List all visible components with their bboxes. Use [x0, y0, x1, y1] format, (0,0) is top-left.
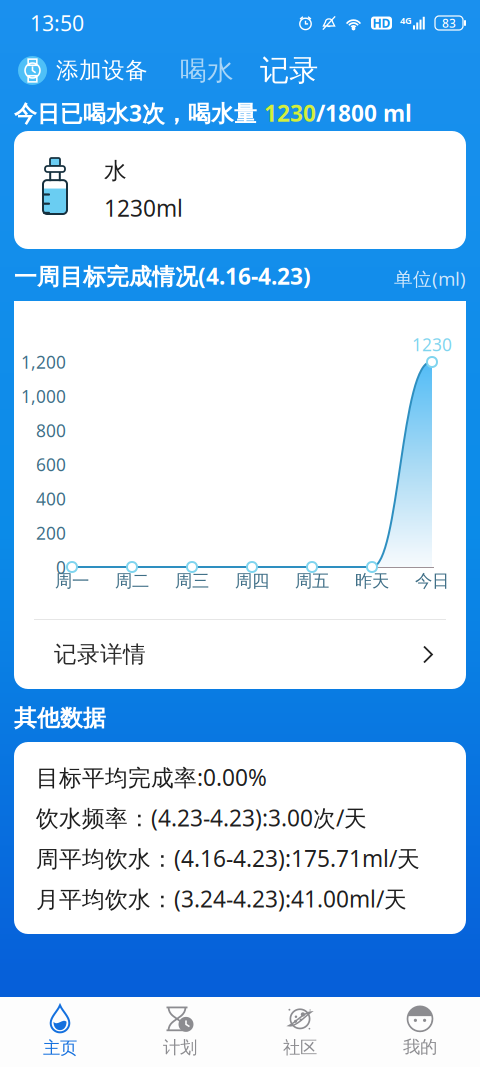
staticText: 水 — [104, 157, 127, 185]
staticText: 一周目标完成情况(4.16-4.23) — [14, 261, 311, 291]
staticText: 饮水频率：(4.23-4.23):3.00次/天 — [36, 803, 367, 833]
staticText: HD — [372, 15, 390, 31]
staticText: 记录 — [260, 52, 318, 88]
staticText: 周五 — [295, 570, 329, 592]
staticText: 今日已喝水3次，喝水量 — [14, 98, 264, 128]
staticText: 社区 — [283, 1037, 317, 1058]
staticText: 计划 — [163, 1037, 197, 1058]
staticText: 0 — [56, 556, 66, 579]
staticText: 其他数据 — [14, 704, 106, 732]
staticText: 600 — [36, 453, 66, 476]
staticText: 周三 — [175, 570, 209, 592]
staticText: 83 — [442, 15, 456, 31]
staticText: 13:50 — [30, 9, 84, 37]
staticText: 喝水 — [180, 54, 234, 87]
staticText: /1800 ml — [316, 98, 412, 128]
staticText: 今日 — [415, 570, 449, 592]
staticText: 月平均饮水：(3.24-4.23):41.00ml/天 — [36, 884, 407, 914]
staticText: 4G — [400, 14, 412, 26]
staticText: 1230ml — [104, 193, 183, 223]
staticText: 目标平均完成率:0.00% — [36, 762, 267, 792]
staticText: 1230 — [412, 333, 452, 356]
staticText: 1230 — [264, 98, 316, 128]
button[interactable]: 喝水 — [180, 54, 234, 87]
button[interactable]: 记录 — [260, 52, 318, 88]
staticText: 200 — [36, 521, 66, 544]
button[interactable]: 主页 — [0, 1005, 120, 1059]
button[interactable]: 记录详情 — [14, 620, 466, 689]
button[interactable]: 计划 — [120, 1006, 240, 1058]
button[interactable]: 社区 — [240, 1006, 360, 1058]
staticText: 单位(ml) — [394, 266, 466, 291]
staticText: 周四 — [235, 570, 269, 592]
button[interactable]: 添加设备 — [18, 56, 148, 85]
staticText: 昨天 — [355, 570, 389, 592]
staticText: 1,000 — [21, 385, 66, 408]
staticText: 周二 — [115, 570, 149, 592]
staticText: 1,200 — [21, 350, 66, 373]
button[interactable]: 我的 — [360, 1006, 480, 1058]
staticText: 周一 — [55, 570, 89, 592]
staticText: 添加设备 — [56, 57, 148, 84]
staticText: 我的 — [403, 1036, 437, 1058]
staticText: 周平均饮水：(4.16-4.23):175.71ml/天 — [36, 843, 420, 873]
staticText: 400 — [36, 487, 66, 510]
staticText: 主页 — [43, 1037, 77, 1059]
staticText: 记录详情 — [54, 641, 146, 668]
staticText: 800 — [36, 419, 66, 442]
